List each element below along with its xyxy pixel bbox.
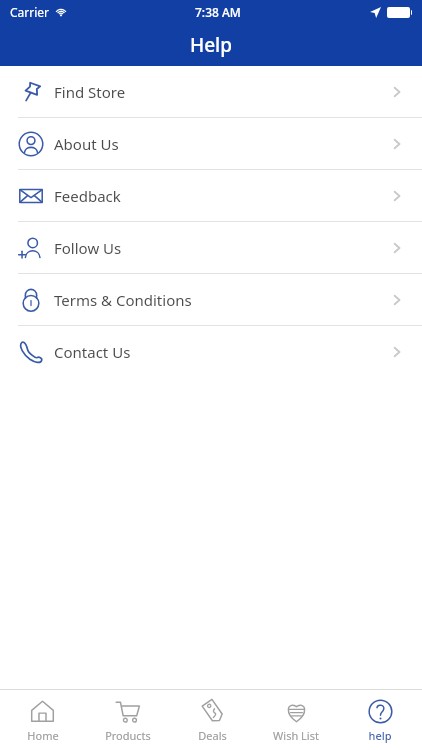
button[interactable]: Contact Us [0,326,422,377]
staticText: Feedback [54,186,121,206]
staticText: About Us [54,134,119,154]
button[interactable]: Follow Us [0,222,422,273]
button[interactable]: Products [85,690,170,750]
staticText: help [368,728,392,743]
staticText: 7:38 AM [195,4,241,20]
button[interactable]: Home [0,690,85,750]
staticText: Help [190,32,233,58]
staticText: Follow Us [54,238,122,258]
staticText: Wish List [273,728,319,743]
button[interactable]: Feedback [0,170,422,221]
staticText: Find Store [54,82,126,102]
staticText: Contact Us [54,342,131,362]
button[interactable]: help [338,690,422,750]
staticText: Carrier [10,4,50,20]
staticText: Terms & Conditions [54,290,192,310]
button[interactable]: Wish List [254,690,338,750]
staticText: Deals [198,728,227,743]
button[interactable]: Terms & Conditions [0,274,422,325]
staticText: Products [105,728,151,743]
staticText: Home [27,728,59,743]
button[interactable]: Deals [170,690,254,750]
button[interactable]: About Us [0,118,422,169]
button[interactable]: Find Store [0,66,422,117]
